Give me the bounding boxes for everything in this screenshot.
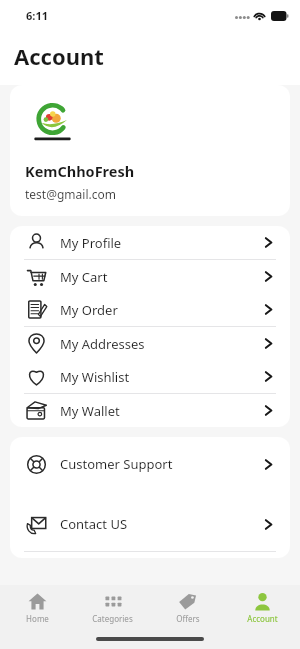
button[interactable]: My Addresses [10, 327, 290, 360]
staticText: test@gmail.com [25, 186, 116, 202]
staticText: Account [14, 41, 104, 71]
staticText: My Addresses [60, 335, 145, 353]
staticText: 6:11 [26, 8, 48, 23]
button[interactable]: My Profile [10, 226, 290, 259]
staticText: My Cart [60, 268, 108, 286]
button[interactable]: Home [0, 589, 75, 624]
button[interactable]: My Order [10, 293, 290, 326]
staticText: My Order [60, 301, 118, 319]
staticText: Account [247, 613, 278, 624]
staticText: KemChhoFresh [25, 161, 135, 181]
button[interactable]: My Wallet [10, 394, 290, 427]
button[interactable]: Offers [150, 589, 225, 624]
staticText: Home [26, 613, 49, 624]
button[interactable]: My Cart [10, 260, 290, 293]
button[interactable]: Contact US [10, 497, 290, 551]
staticText: Offers [176, 613, 200, 624]
staticText: My Profile [60, 234, 122, 252]
staticText: My Wishlist [60, 368, 130, 386]
button[interactable]: Customer Support [10, 437, 290, 491]
staticText: Customer Support [60, 455, 173, 473]
staticText: My Wallet [60, 402, 120, 420]
button[interactable]: Account [225, 589, 300, 624]
staticText: Contact US [60, 515, 128, 533]
button[interactable]: My Wishlist [10, 360, 290, 393]
staticText: Categories [92, 613, 133, 624]
button[interactable]: Categories [75, 589, 150, 624]
